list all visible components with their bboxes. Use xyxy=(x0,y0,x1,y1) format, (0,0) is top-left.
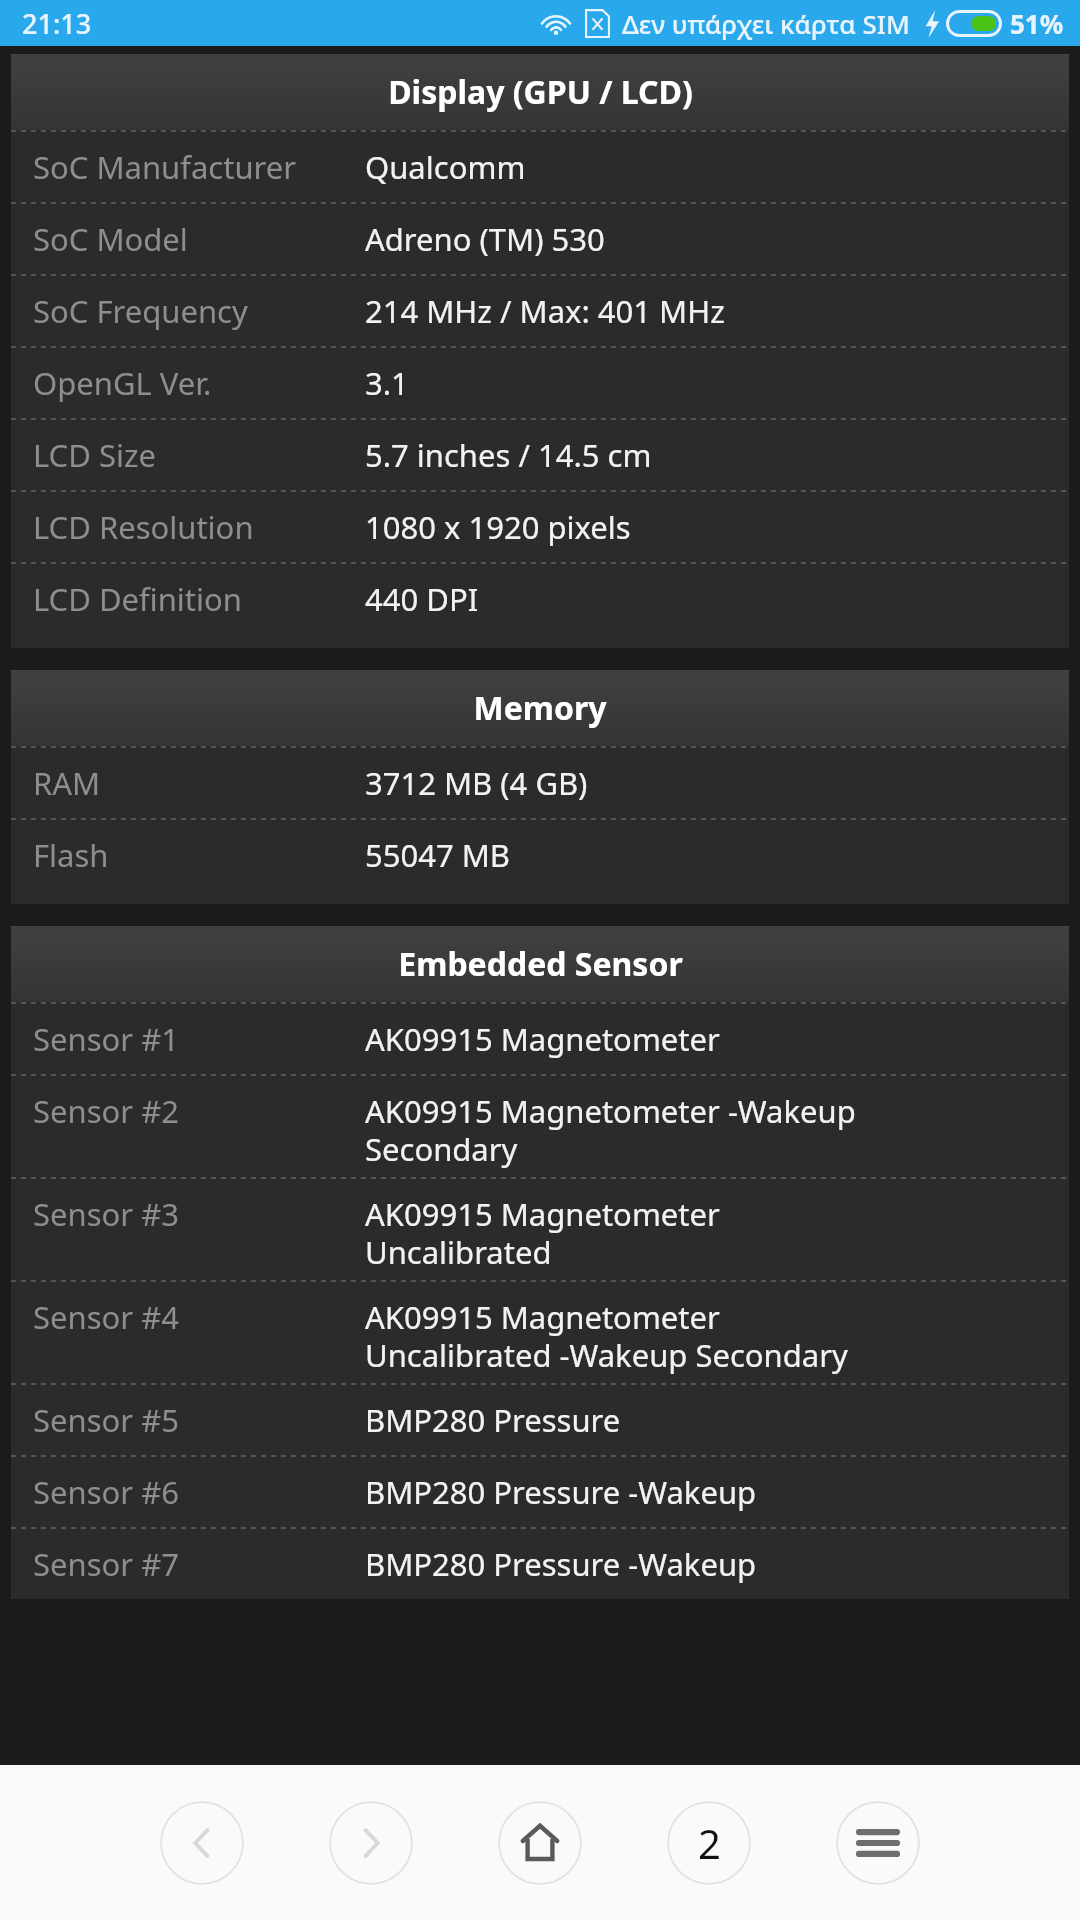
staticText: Qualcomm xyxy=(365,146,1057,188)
button[interactable]: OpenGL Ver. xyxy=(11,348,1069,418)
staticText: 51% xyxy=(1010,6,1064,41)
staticText: LCD Resolution xyxy=(33,506,365,548)
staticText: Sensor #1 xyxy=(33,1018,365,1060)
button[interactable]: RAM xyxy=(11,748,1069,818)
staticText: BMP280 Pressure -Wakeup xyxy=(365,1471,1057,1513)
staticText: Adreno (TM) 530 xyxy=(365,218,1057,260)
staticText: Sensor #6 xyxy=(33,1471,365,1513)
staticText: 55047 MB xyxy=(365,834,1057,876)
staticText: AK09915 Magnetometer -Wakeup Secondary xyxy=(365,1090,1057,1170)
staticText: 3712 MB (4 GB) xyxy=(365,762,1057,804)
staticText: LCD Definition xyxy=(33,578,365,620)
button[interactable]: Flash xyxy=(11,820,1069,890)
staticText: 21:13 xyxy=(22,5,92,42)
staticText: Sensor #3 xyxy=(33,1193,365,1235)
staticText: SoC Model xyxy=(33,218,365,260)
staticText: Sensor #4 xyxy=(33,1296,365,1338)
button[interactable]: Back xyxy=(160,1801,244,1885)
staticText: Embedded Sensor xyxy=(398,942,683,986)
staticText: SoC Frequency xyxy=(33,290,365,332)
button[interactable]: Menu xyxy=(836,1801,920,1885)
button[interactable]: Home xyxy=(498,1801,582,1885)
button[interactable]: Sensor #5 xyxy=(11,1385,1069,1455)
staticText: LCD Size xyxy=(33,434,365,476)
button[interactable]: Forward xyxy=(329,1801,413,1885)
staticText: Display (GPU / LCD) xyxy=(388,70,693,114)
staticText: AK09915 Magnetometer Uncalibrated xyxy=(365,1193,1057,1273)
staticText: RAM xyxy=(33,762,365,804)
button[interactable]: Sensor #1 xyxy=(11,1004,1069,1074)
staticText: Flash xyxy=(33,834,365,876)
staticText: 214 MHz / Max: 401 MHz xyxy=(365,290,1057,332)
button[interactable]: LCD Definition xyxy=(11,564,1069,634)
button[interactable]: Sensor #7 xyxy=(11,1529,1069,1599)
staticText: Δεν υπάρχει κάρτα SIM xyxy=(622,6,910,41)
button[interactable]: Sensor #4 xyxy=(11,1282,1069,1383)
staticText: AK09915 Magnetometer Uncalibrated -Wakeu… xyxy=(365,1296,1057,1376)
button[interactable]: Tabs, 2 open xyxy=(667,1801,751,1885)
button[interactable]: SoC Manufacturer xyxy=(11,132,1069,202)
staticText: Sensor #5 xyxy=(33,1399,365,1441)
staticText: Sensor #2 xyxy=(33,1090,365,1132)
button[interactable]: Sensor #2 xyxy=(11,1076,1069,1177)
staticText: BMP280 Pressure -Wakeup xyxy=(365,1543,1057,1585)
staticText: 440 DPI xyxy=(365,578,1057,620)
staticText: 2 xyxy=(698,1816,721,1870)
staticText: BMP280 Pressure xyxy=(365,1399,1057,1441)
button[interactable]: SoC Frequency xyxy=(11,276,1069,346)
staticText: SoC Manufacturer xyxy=(33,146,365,188)
staticText: 3.1 xyxy=(365,362,1057,404)
button[interactable]: LCD Size xyxy=(11,420,1069,490)
staticText: 5.7 inches / 14.5 cm xyxy=(365,434,1057,476)
staticText: 1080 x 1920 pixels xyxy=(365,506,1057,548)
staticText: OpenGL Ver. xyxy=(33,362,365,404)
button[interactable]: Sensor #6 xyxy=(11,1457,1069,1527)
staticText: AK09915 Magnetometer xyxy=(365,1018,1057,1060)
button[interactable]: LCD Resolution xyxy=(11,492,1069,562)
button[interactable]: SoC Model xyxy=(11,204,1069,274)
staticText: Sensor #7 xyxy=(33,1543,365,1585)
staticText: Memory xyxy=(473,686,607,730)
button[interactable]: Sensor #3 xyxy=(11,1179,1069,1280)
